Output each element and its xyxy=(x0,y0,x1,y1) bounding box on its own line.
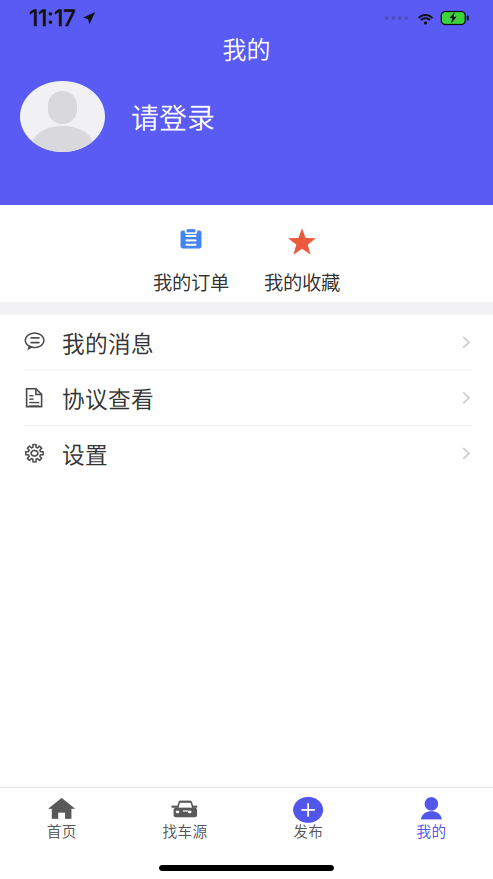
button[interactable]: 协议查看 xyxy=(0,370,493,426)
staticText: 请登录 xyxy=(131,96,215,137)
staticText: 发布 xyxy=(293,820,323,841)
button[interactable]: 首页 xyxy=(0,788,123,845)
staticText: 我的 xyxy=(416,820,446,841)
staticText: 我的消息 xyxy=(62,326,154,359)
staticText: 我的 xyxy=(222,31,270,65)
button[interactable]: 找车源 xyxy=(123,788,246,845)
staticText: 找车源 xyxy=(162,820,207,841)
staticText: 我的收藏 xyxy=(264,267,340,295)
staticText: 我的订单 xyxy=(153,267,229,295)
button[interactable]: 我的 xyxy=(370,788,493,845)
button[interactable]: 我的消息 xyxy=(0,315,493,370)
staticText: 协议查看 xyxy=(62,381,154,414)
staticText: 11:17 xyxy=(29,4,76,32)
staticText: 设置 xyxy=(62,437,108,470)
button[interactable]: 发布 xyxy=(246,788,370,845)
button[interactable]: 我的收藏 xyxy=(246,205,357,302)
button[interactable]: 设置 xyxy=(0,426,493,480)
button[interactable]: 我的订单 xyxy=(135,205,246,302)
staticText: 首页 xyxy=(47,820,77,841)
